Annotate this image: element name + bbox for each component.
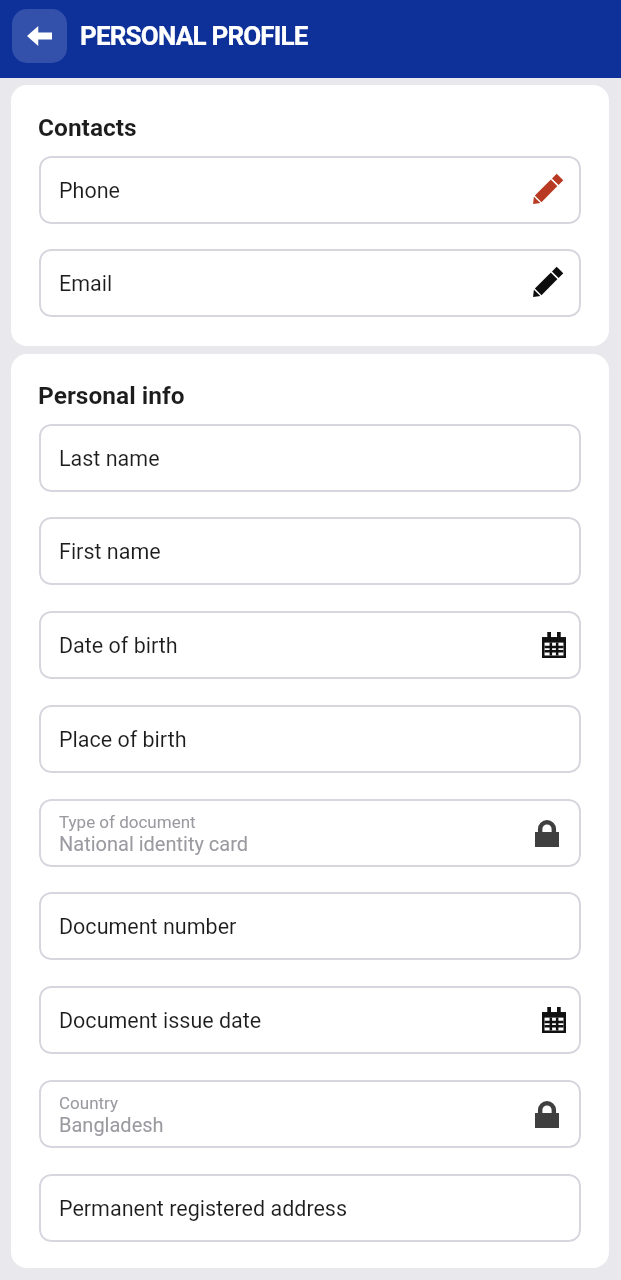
button[interactable]: Country [39,1080,581,1148]
staticText: Country [59,1093,119,1113]
staticText: First name [59,539,161,564]
button[interactable]: Last name [39,424,581,492]
staticText: PERSONAL PROFILE [80,21,308,51]
staticText: Permanent registered address [59,1196,348,1221]
button[interactable]: Date of birth [39,611,581,679]
button[interactable]: Document issue date [39,986,581,1054]
staticText: Date of birth [59,633,178,658]
staticText: Personal info [38,381,185,410]
staticText: Contacts [38,113,137,142]
staticText: Last name [59,446,160,471]
staticText: Document number [59,914,237,939]
button[interactable]: Place of birth [39,705,581,773]
staticText: Type of document [59,812,196,832]
staticText: National identity card [59,832,249,855]
staticText: Place of birth [59,727,187,752]
button[interactable]: Document number [39,892,581,960]
staticText: Phone [59,178,120,203]
staticText: Email [59,271,113,296]
staticText: Bangladesh [59,1113,164,1136]
button[interactable]: Type of document [39,799,581,867]
button[interactable]: Back [12,9,67,63]
button[interactable]: Email [39,249,581,317]
button[interactable]: First name [39,517,581,585]
staticText: Document issue date [59,1008,262,1033]
button[interactable]: Phone [39,156,581,224]
button[interactable]: Permanent registered address [39,1174,581,1242]
